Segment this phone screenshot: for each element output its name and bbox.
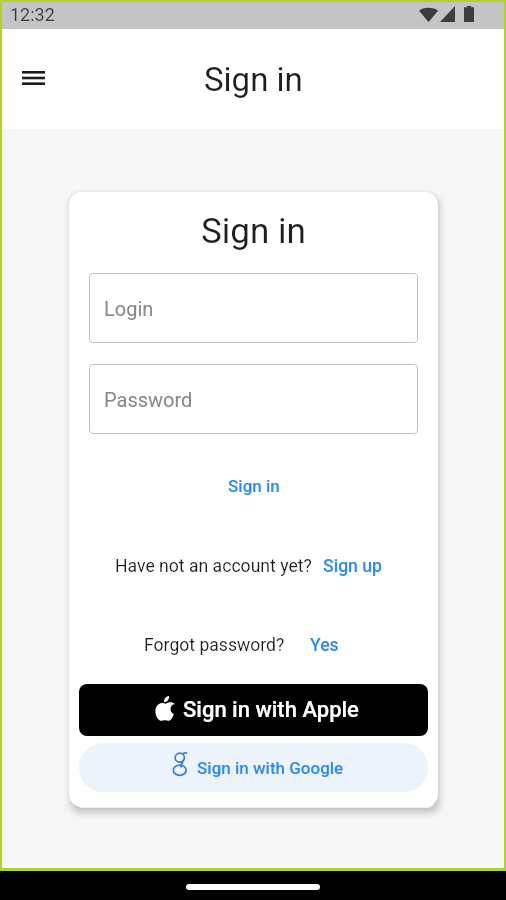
button[interactable]: Sign in with Google bbox=[79, 743, 428, 792]
button[interactable]: Open navigation menu bbox=[10, 56, 57, 103]
staticText: Sign in with Google bbox=[197, 758, 344, 778]
staticText: 12:32 bbox=[10, 4, 55, 25]
button[interactable]: Login bbox=[89, 273, 418, 343]
staticText: Yes bbox=[310, 635, 339, 656]
button[interactable]: Yes bbox=[310, 635, 339, 656]
button[interactable]: Password bbox=[89, 364, 418, 434]
staticText: Sign in bbox=[228, 476, 280, 496]
staticText: Sign in bbox=[204, 60, 303, 99]
staticText: Sign in bbox=[201, 211, 306, 252]
button[interactable]: Sign up bbox=[323, 556, 382, 577]
staticText: Sign in with Apple bbox=[183, 697, 359, 723]
staticText: Sign up bbox=[323, 556, 382, 577]
button[interactable]: Sign in with Apple bbox=[79, 684, 428, 736]
staticText: Login bbox=[104, 297, 154, 320]
staticText: Have not an account yet? bbox=[115, 556, 312, 577]
button[interactable]: Sign in bbox=[220, 472, 288, 500]
staticText: Forgot password? bbox=[144, 635, 285, 656]
staticText: Password bbox=[104, 388, 193, 411]
